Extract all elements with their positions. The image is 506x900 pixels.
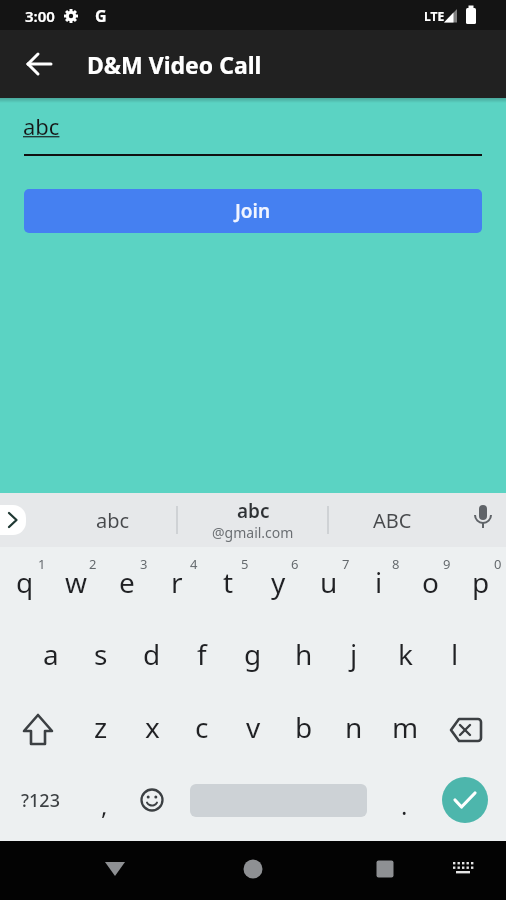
staticText: abc xyxy=(96,507,130,534)
staticText: k xyxy=(398,635,413,673)
staticText: LTE xyxy=(424,8,445,24)
staticText: 3 xyxy=(140,555,148,573)
staticText: 8 xyxy=(392,555,400,573)
staticText: 1 xyxy=(38,555,46,573)
staticText: @gmail.com xyxy=(212,523,294,542)
staticText: 5 xyxy=(241,555,249,573)
staticText: 0 xyxy=(494,555,502,573)
staticText: abc xyxy=(23,111,60,141)
staticText: p xyxy=(472,563,490,601)
staticText: l xyxy=(451,635,459,673)
staticText: h xyxy=(295,635,313,673)
staticText: a xyxy=(43,635,59,673)
staticText: x xyxy=(145,708,160,746)
staticText: q xyxy=(16,563,34,601)
staticText: g xyxy=(244,635,262,673)
staticText: 9 xyxy=(443,555,451,573)
staticText: i xyxy=(375,563,383,601)
staticText: j xyxy=(350,635,358,673)
staticText: y xyxy=(271,563,286,601)
staticText: f xyxy=(197,635,207,673)
staticText: t xyxy=(223,563,234,601)
staticText: D&M Video Call xyxy=(87,49,262,80)
staticText: c xyxy=(195,708,209,746)
staticText: n xyxy=(345,708,363,746)
staticText: b xyxy=(295,708,313,746)
staticText: w xyxy=(65,563,88,601)
staticText: d xyxy=(143,635,161,673)
staticText: u xyxy=(320,563,338,601)
staticText: z xyxy=(94,708,108,746)
staticText: 6 xyxy=(291,555,299,573)
staticText: 7 xyxy=(342,555,350,573)
staticText: 3:00 xyxy=(25,6,55,26)
staticText: G xyxy=(95,5,107,27)
staticText: o xyxy=(422,563,439,601)
staticText: e xyxy=(119,563,135,601)
staticText: m xyxy=(392,708,419,746)
staticText: abc xyxy=(237,498,270,524)
staticText: 4 xyxy=(190,555,198,573)
staticText: r xyxy=(171,563,183,601)
staticText: . xyxy=(401,789,408,822)
staticText: ABC xyxy=(373,507,412,534)
staticText: 2 xyxy=(89,555,97,573)
staticText: ?123 xyxy=(21,788,60,813)
staticText: s xyxy=(94,635,108,673)
staticText: Join xyxy=(235,198,271,224)
staticText: , xyxy=(101,789,108,822)
staticText: v xyxy=(246,708,261,746)
